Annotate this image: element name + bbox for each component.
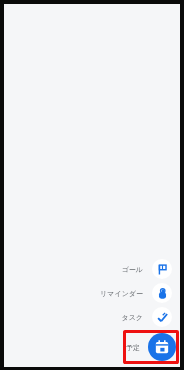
staticText: 予定 — [126, 343, 140, 352]
button[interactable]: リマインダー — [100, 283, 172, 303]
other: リマインダー — [157, 288, 168, 299]
staticText: リマインダー — [100, 289, 143, 298]
staticText: ゴール — [121, 265, 143, 274]
button[interactable]: タスク — [121, 307, 172, 327]
other: タスク — [157, 312, 168, 323]
other: ゴール — [157, 264, 168, 275]
staticText: タスク — [121, 313, 143, 322]
button[interactable]: 予定 — [126, 333, 176, 361]
button[interactable]: 予定を作成 — [148, 333, 176, 361]
button[interactable]: ゴール — [121, 259, 172, 279]
